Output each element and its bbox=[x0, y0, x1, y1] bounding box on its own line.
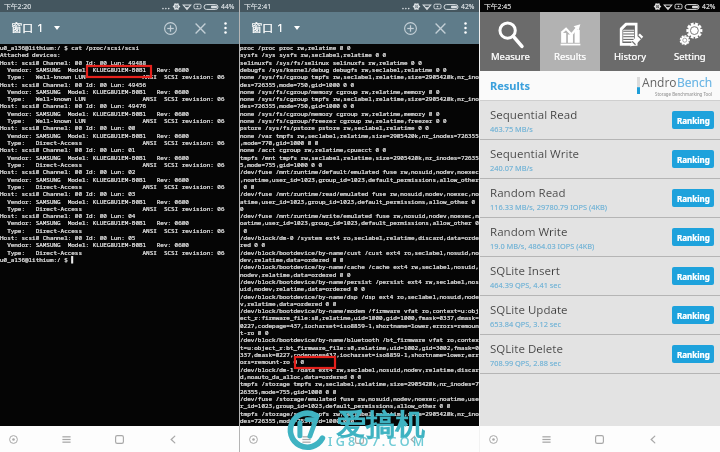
button[interactable]: Close window bbox=[187, 12, 213, 44]
staticText: des=726355,mode=750,gid=1000 0 0 bbox=[240, 102, 355, 110]
button[interactable]: Assistant bbox=[227, 426, 280, 452]
button[interactable]: Assistant bbox=[0, 426, 40, 452]
button[interactable]: Ranking bbox=[672, 228, 714, 246]
staticText: 42% bbox=[461, 2, 475, 11]
staticText: u0_a136@lithium:/ $ cat /proc/scsi/scsi bbox=[0, 44, 139, 52]
button[interactable]: Ranking bbox=[672, 111, 714, 129]
staticText: SQLite Delete bbox=[490, 341, 563, 357]
staticText: selinuxfs /sys/fs/selinux selinuxfs rw,r… bbox=[240, 59, 422, 67]
button[interactable]: History bbox=[600, 12, 660, 71]
staticText: none /sys/fs/cgroup tmpfs rw,seclabel,re… bbox=[240, 95, 479, 103]
button[interactable]: SQLite Delete bbox=[480, 335, 720, 373]
staticText: 42% bbox=[702, 2, 716, 11]
button[interactable]: Random Write bbox=[480, 218, 720, 256]
staticText: Host: scsi0 Channel: 00 Id: 00 Lun: 4945… bbox=[0, 81, 147, 89]
staticText: 116.33 MB/s, 29780.79 IOPS (4KB) bbox=[490, 202, 608, 212]
staticText: Host: scsi0 Channel: 00 Id: 00 Lun: 01 bbox=[0, 146, 136, 154]
button[interactable]: Results bbox=[540, 12, 600, 71]
staticText: Host: scsi0 Channel: 00 Id: 00 Lun: 4947… bbox=[0, 102, 147, 110]
staticText: Random Write bbox=[490, 224, 568, 240]
staticText: Storage Benchmarking Tool bbox=[655, 91, 713, 97]
staticText: proc /proc proc rw,relatime 0 0 bbox=[240, 44, 351, 52]
button[interactable]: Ranking bbox=[672, 267, 714, 285]
staticText: Ranking bbox=[677, 154, 710, 165]
button[interactable]: Sequential Write bbox=[480, 140, 720, 178]
staticText: Ranking bbox=[677, 349, 710, 360]
staticText: debugfs /sys/kernel/debug debugfs rw,sec… bbox=[240, 66, 447, 74]
button[interactable]: Ranking bbox=[672, 150, 714, 168]
staticText: Type: Well-known LUN ANSI SCSI revision:… bbox=[0, 117, 225, 125]
button[interactable]: Ranking bbox=[672, 189, 714, 207]
button[interactable]: Recents bbox=[520, 426, 573, 452]
staticText: 653.84 QPS, 3.12 sec bbox=[490, 319, 562, 329]
button[interactable]: Back bbox=[626, 426, 679, 452]
staticText: /dev/fuse /mnt/runtime/write/emulated fu… bbox=[240, 212, 479, 220]
staticText: /dev/fuse /mnt/runtime/default/emulated … bbox=[240, 168, 479, 176]
staticText: Ranking bbox=[677, 310, 710, 321]
button[interactable]: Measure bbox=[480, 12, 540, 71]
staticText: 0227,codepage=437,iocharset=iso8859-1,sh… bbox=[240, 322, 479, 330]
button[interactable]: Ranking bbox=[672, 306, 714, 324]
staticText: 0 0 bbox=[240, 183, 255, 191]
staticText: Sequential Read bbox=[490, 107, 578, 123]
staticText: Vendor: SAMSUNG Model: KLUEG8U1EM-B0B1 R… bbox=[0, 154, 189, 162]
staticText: Host: scsi0 Channel: 00 Id: 00 Lun: 02 bbox=[0, 168, 136, 176]
staticText: Vendor: SAMSUNG Model: KLUEG8U1EM-B0B1 R… bbox=[0, 241, 189, 249]
button[interactable]: More options bbox=[454, 12, 477, 44]
staticText: Random Read bbox=[490, 185, 566, 201]
staticText: 窗口 1 bbox=[251, 20, 284, 36]
button[interactable]: Home bbox=[333, 426, 386, 452]
staticText: Andro bbox=[642, 74, 677, 90]
button[interactable]: SQLite Insert bbox=[480, 257, 720, 295]
staticText: sysfs /sys sysfs rw,seclabel,relatime 0 … bbox=[240, 51, 387, 59]
staticText: none /sys/fs/cgroup tmpfs rw,seclabel,re… bbox=[240, 73, 479, 81]
button[interactable]: Random Read bbox=[480, 179, 720, 217]
staticText: tmpfs /storage/self tmpfs rw,seclabel,re… bbox=[240, 410, 479, 418]
button[interactable]: Setting bbox=[660, 12, 720, 71]
staticText: /dev/block/bootdevice/by-name/dsp /dsp e… bbox=[240, 293, 479, 301]
button[interactable]: Home bbox=[93, 426, 146, 452]
staticText: ect_r:firmware_file:s0,relatime,uid=1000… bbox=[240, 314, 479, 322]
button[interactable]: Ranking bbox=[672, 345, 714, 363]
staticText: /dev/block/dm-1 /data ext4 rw,seclabel,n… bbox=[240, 366, 479, 374]
staticText: Type: Direct-Access ANSI SCSI revision: … bbox=[0, 227, 225, 235]
button[interactable]: Recents bbox=[40, 426, 93, 452]
staticText: Vendor: SAMSUNG Model: KLUEG8U1EM-B0B1 R… bbox=[0, 132, 189, 140]
button[interactable]: Close window bbox=[427, 12, 453, 44]
staticText: /dev/block/bootdevice/by-name/cache /cac… bbox=[240, 263, 479, 271]
staticText: nodev,relatime,data=ordered 0 0 bbox=[240, 271, 351, 279]
button[interactable]: 窗口 1 bbox=[0, 16, 68, 40]
staticText: Setting bbox=[674, 50, 706, 63]
staticText: Sequential Write bbox=[490, 146, 580, 162]
button[interactable]: Back bbox=[146, 426, 199, 452]
button[interactable]: Home bbox=[573, 426, 626, 452]
staticText: /dev/fuse /mnt/runtime/read/emulated fus… bbox=[240, 190, 479, 198]
button[interactable]: More options bbox=[214, 12, 237, 44]
staticText: Attached devices: bbox=[0, 51, 61, 59]
staticText: ,noatime,user_id=1023,group_id=1023,defa… bbox=[240, 176, 479, 184]
staticText: des=726355,mode=755,gid=1000 0 0 bbox=[240, 417, 355, 425]
staticText: Ranking bbox=[677, 271, 710, 282]
staticText: Ranking bbox=[677, 232, 710, 243]
staticText: none /var tmpfs rw,seclabel,relatime,siz… bbox=[240, 132, 479, 140]
button[interactable]: New window bbox=[397, 12, 424, 44]
staticText: ors=remount-ro 0 0 bbox=[240, 358, 305, 366]
button[interactable]: 窗口 1 bbox=[240, 16, 308, 40]
staticText: Type: Direct-Access ANSI SCSI revision: … bbox=[0, 205, 225, 213]
staticText: 5,mode=755,gid=1000 0 0 bbox=[240, 161, 322, 169]
button[interactable]: SQLite Update bbox=[480, 296, 720, 334]
button[interactable]: Recents bbox=[280, 426, 333, 452]
staticText: Vendor: SAMSUNG Model: KLUEG8U1EM-B0B1 R… bbox=[0, 198, 189, 206]
button[interactable]: Back bbox=[386, 426, 439, 452]
button[interactable]: New window bbox=[157, 12, 184, 44]
staticText: t-ro 0 0 bbox=[240, 329, 269, 337]
button[interactable]: Sequential Read bbox=[480, 101, 720, 139]
staticText: r_id=1023,group_id=1023,default_permissi… bbox=[240, 402, 451, 410]
staticText: tmpfs /storage tmpfs rw,seclabel,relatim… bbox=[240, 380, 479, 388]
staticText: none /acct cgroup rw,relatime,cpuacct 0 … bbox=[240, 146, 387, 154]
staticText: Results bbox=[490, 78, 531, 93]
staticText: Type: Well-known LUN ANSI SCSI revision:… bbox=[0, 73, 225, 81]
staticText: SQLite Update bbox=[490, 302, 568, 318]
staticText: Ranking bbox=[677, 193, 710, 204]
button[interactable]: Assistant bbox=[467, 426, 520, 452]
